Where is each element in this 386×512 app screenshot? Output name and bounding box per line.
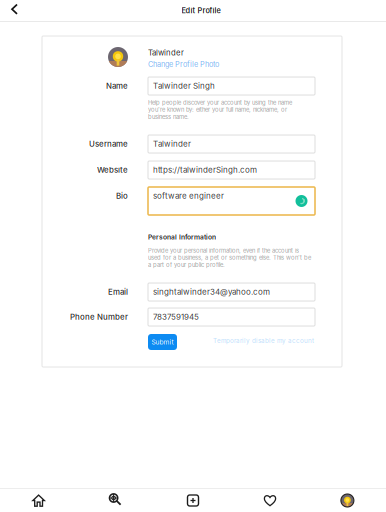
staticText: 7837591945: [153, 312, 199, 322]
staticText: Email: [108, 287, 128, 297]
staticText: software engineer: [153, 191, 224, 201]
staticText: https://talwinderSingh.com: [153, 165, 257, 175]
staticText: singhtalwinder34@yahoo.com: [153, 287, 270, 297]
staticText: Edit Profile: [181, 6, 220, 15]
button[interactable]: Home: [0, 489, 77, 512]
button[interactable]: Temporarily disable my account: [213, 337, 314, 345]
staticText: Bio: [116, 191, 128, 201]
button[interactable]: Search: [77, 489, 154, 512]
staticText: Talwinder: [148, 48, 184, 57]
staticText: Help people discover your account by usi…: [148, 99, 292, 120]
button[interactable]: Profile: [309, 489, 386, 512]
staticText: Submit: [151, 338, 173, 346]
button[interactable]: Change Profile Photo: [148, 60, 219, 69]
button[interactable]: Activity: [232, 489, 309, 512]
staticText: Phone Number: [70, 312, 128, 322]
staticText: Talwinder: [153, 139, 191, 149]
staticText: Change Profile Photo: [148, 60, 219, 69]
staticText: Talwinder Singh: [153, 81, 215, 91]
staticText: Username: [89, 139, 128, 149]
staticText: Personal Information: [148, 233, 216, 241]
staticText: Website: [97, 165, 128, 175]
button[interactable]: Submit: [148, 334, 177, 350]
button[interactable]: Back: [2, 0, 28, 22]
button[interactable]: Profile photo: [108, 47, 128, 67]
button[interactable]: New post: [154, 489, 232, 512]
staticText: Provide your personal information, even …: [148, 247, 311, 268]
staticText: Name: [106, 81, 128, 91]
staticText: Temporarily disable my account: [213, 337, 314, 345]
